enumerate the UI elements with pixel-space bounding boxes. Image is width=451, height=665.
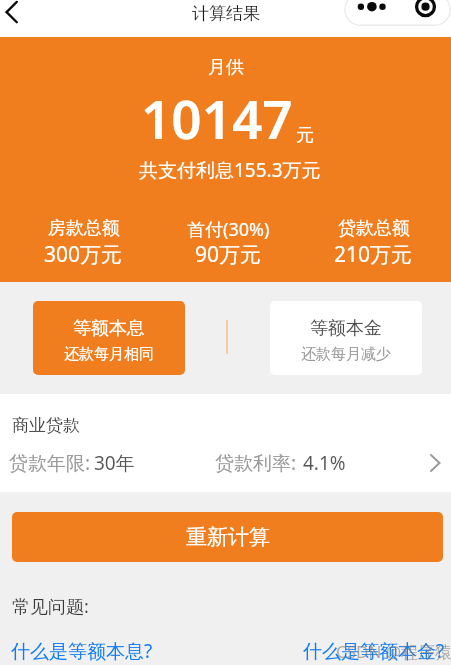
staticText: CSDN @程序猿	[336, 640, 451, 663]
staticText: 常见问题:	[12, 594, 89, 619]
button[interactable]: 商业贷款	[0, 394, 451, 492]
button[interactable]: Back	[0, 0, 30, 28]
button[interactable]: 等额本息	[33, 301, 185, 375]
button[interactable]: 等额本金	[270, 301, 422, 375]
staticText: 首付(30%)	[187, 217, 270, 242]
staticText: 贷款利率:	[215, 450, 297, 476]
staticText: 商业贷款	[12, 415, 80, 436]
staticText: 300万元	[44, 240, 123, 269]
staticText: 等额本金	[310, 317, 382, 340]
button[interactable]: 什么是等额本金?	[303, 638, 445, 664]
staticText: 贷款总额	[338, 217, 410, 240]
staticText: 10147	[141, 82, 293, 154]
staticText: 还款每月减少	[301, 345, 391, 364]
staticText: 重新计算	[186, 524, 270, 550]
button[interactable]: Menu	[344, 0, 451, 26]
staticText: 贷款年限:	[9, 450, 91, 476]
button[interactable]: 重新计算	[12, 512, 443, 562]
staticText: 等额本息	[73, 317, 145, 340]
staticText: 元	[296, 124, 314, 147]
staticText: 90万元	[195, 240, 262, 269]
staticText: 共支付利息155.3万元	[139, 157, 321, 183]
staticText: 30年	[94, 450, 135, 476]
staticText: 房款总额	[48, 217, 120, 240]
staticText: 4.1%	[303, 450, 346, 476]
staticText: 还款每月相同	[64, 345, 154, 364]
button[interactable]: 什么是等额本息?	[11, 638, 153, 664]
staticText: 计算结果	[192, 3, 260, 24]
staticText: 月供	[208, 56, 244, 79]
staticText: 210万元	[334, 240, 413, 269]
